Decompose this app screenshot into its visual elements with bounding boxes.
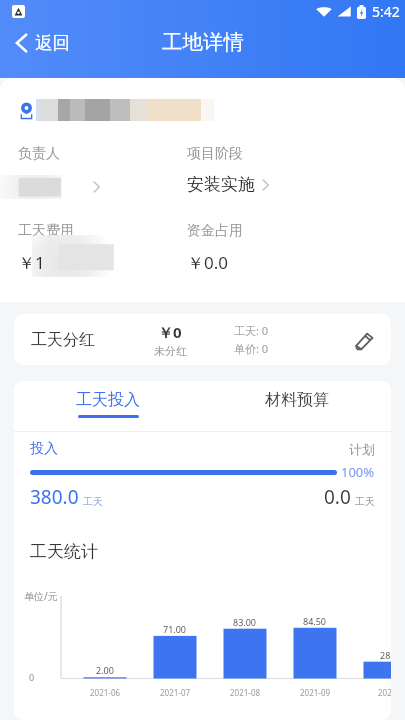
staticText: 安装实施 [187, 174, 255, 195]
staticText: 未分红 [154, 344, 187, 358]
staticText: 84.50 [303, 615, 327, 627]
button[interactable]: 材料预算 [202, 381, 391, 417]
button[interactable]: 返回 [11, 29, 75, 57]
staticText: 工天分红 [31, 330, 95, 350]
staticText: 单价: 0 [234, 341, 269, 356]
staticText: 工天: 0 [234, 323, 269, 338]
staticText: 负责人 [18, 145, 60, 163]
button[interactable]: 编辑 [349, 325, 379, 355]
staticText: 资金占用 [187, 222, 243, 240]
staticText: 0.0 [324, 484, 351, 510]
staticText: ￥1 [18, 251, 45, 274]
staticText: 投入 [30, 440, 58, 458]
staticText: 工天 [355, 495, 375, 508]
staticText: 2021-09 [300, 687, 331, 698]
staticText: 材料预算 [265, 390, 329, 410]
staticText: 83.00 [233, 616, 257, 628]
staticText: 计划 [349, 441, 375, 457]
staticText: 380.0 [30, 484, 79, 510]
staticText: 项目阶段 [187, 145, 243, 163]
staticText: 单位/元 [24, 589, 58, 603]
staticText: 2021-07 [160, 687, 191, 698]
button[interactable]: 工天投入 [14, 381, 202, 417]
staticText: 28 [380, 649, 391, 661]
staticText: ￥0 [158, 322, 182, 342]
staticText: 工天统计 [30, 541, 98, 562]
staticText: 2021-06 [90, 687, 121, 698]
staticText: ￥0.0 [187, 251, 229, 274]
staticText: 0 [29, 671, 35, 683]
staticText: 100% [341, 463, 375, 481]
staticText: 工天 [83, 495, 103, 508]
staticText: 返回 [35, 32, 70, 54]
button[interactable]: 工天分红 [14, 314, 391, 365]
staticText: 2021-08 [230, 687, 261, 698]
staticText: 2.00 [96, 664, 114, 676]
staticText: 5:42 [372, 2, 400, 21]
staticText: 工天费用 [18, 222, 74, 240]
staticText: 工天投入 [76, 390, 140, 410]
staticText: 工地详情 [162, 29, 244, 55]
staticText: 202 [378, 687, 391, 698]
staticText: 71.00 [163, 623, 187, 635]
